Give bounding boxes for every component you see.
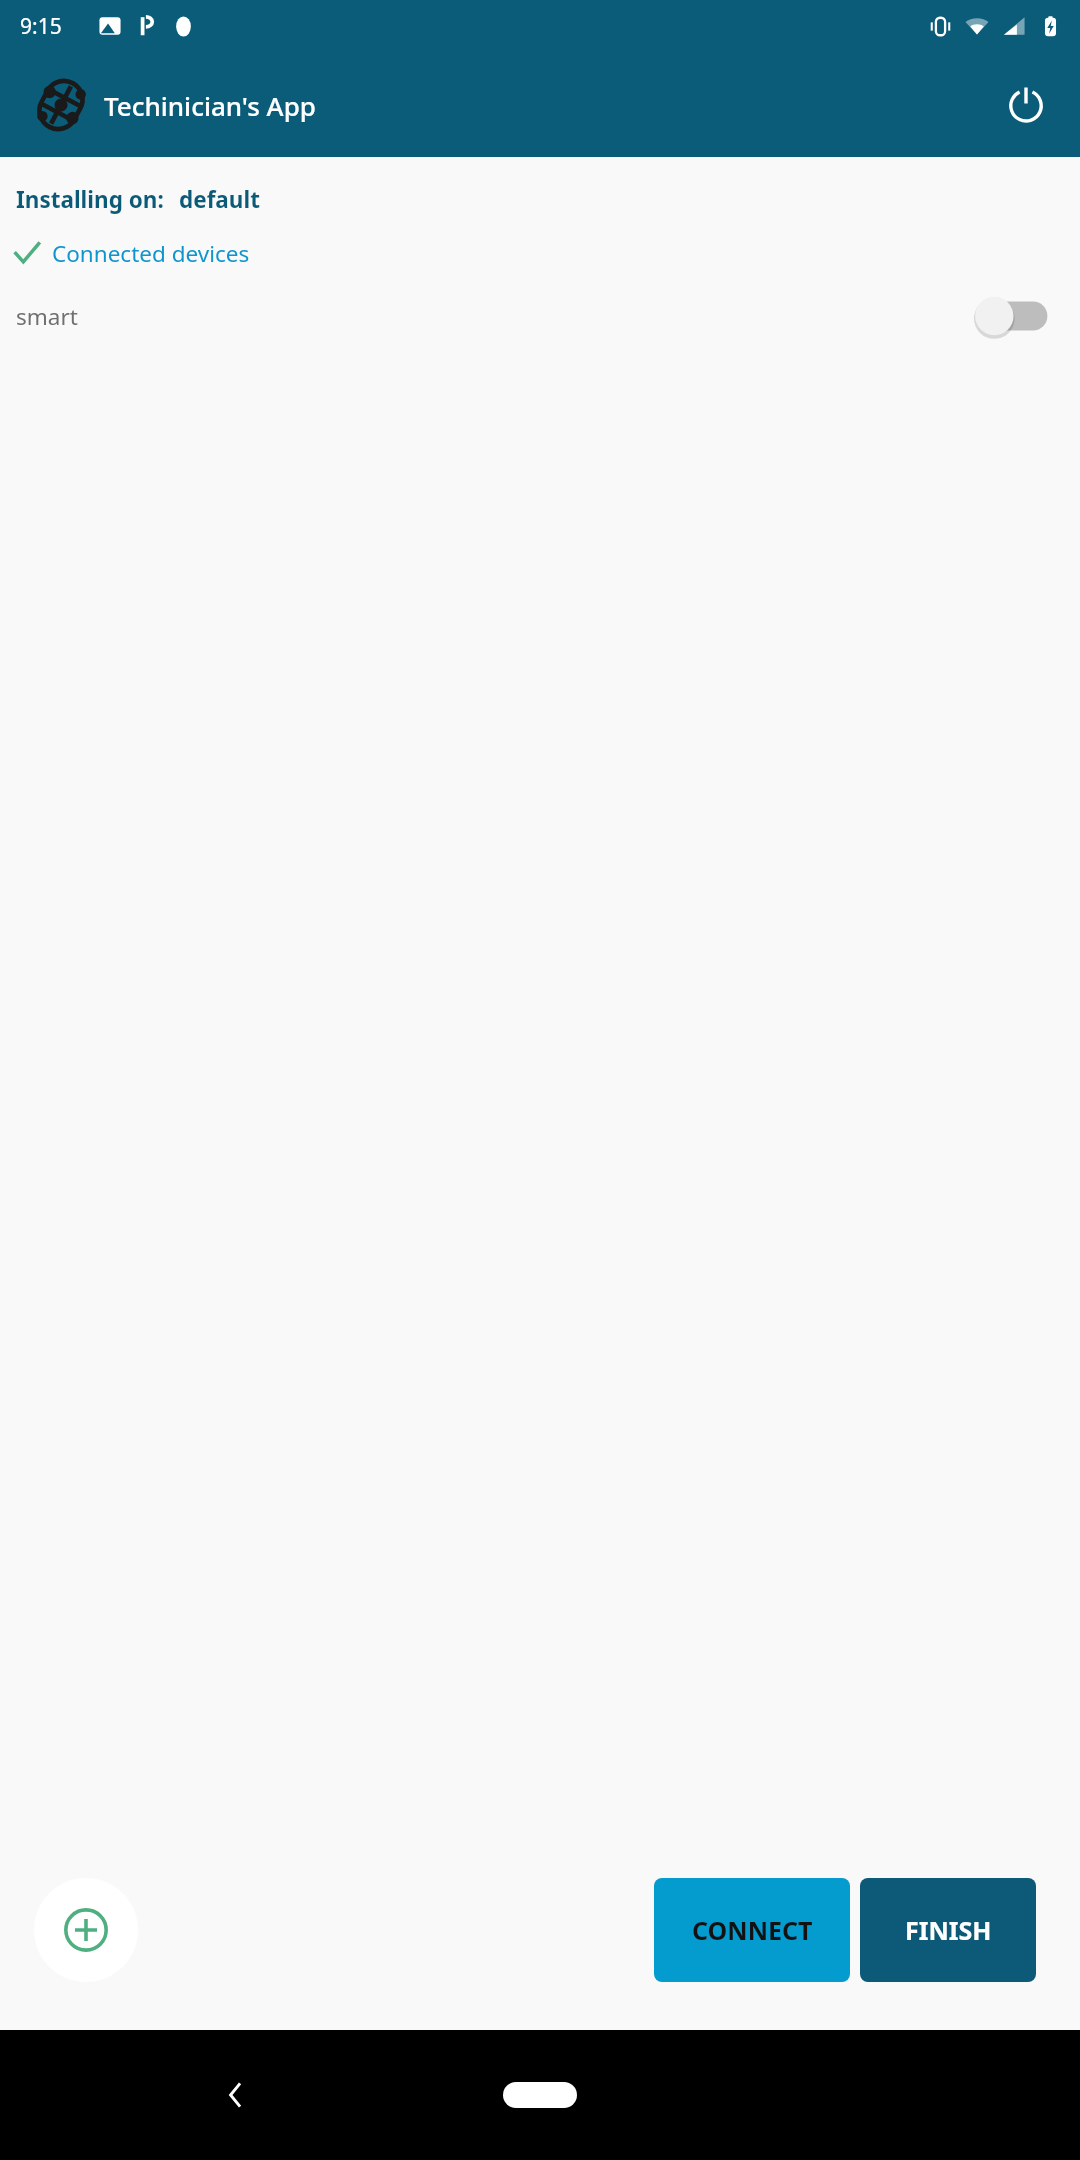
button[interactable]: Add device (34, 1878, 138, 1982)
button[interactable]: Home (490, 2060, 590, 2130)
button[interactable]: FINISH (860, 1878, 1036, 1982)
staticText: CONNECT (692, 1913, 813, 1947)
button[interactable]: Back (190, 2049, 282, 2141)
button[interactable]: Power (994, 73, 1058, 137)
staticText: smart (16, 301, 970, 332)
staticText: Techinician's App (104, 88, 316, 123)
button[interactable]: smart toggle (970, 292, 1056, 340)
button[interactable]: Connected devices (0, 235, 1080, 272)
staticText: Installing on: (16, 184, 164, 215)
staticText: 9:15 (20, 12, 62, 41)
staticText: default (179, 184, 260, 215)
staticText: Connected devices (52, 238, 250, 269)
staticText: FINISH (905, 1913, 992, 1947)
button[interactable]: smart (0, 288, 1080, 344)
button[interactable]: CONNECT (654, 1878, 850, 1982)
